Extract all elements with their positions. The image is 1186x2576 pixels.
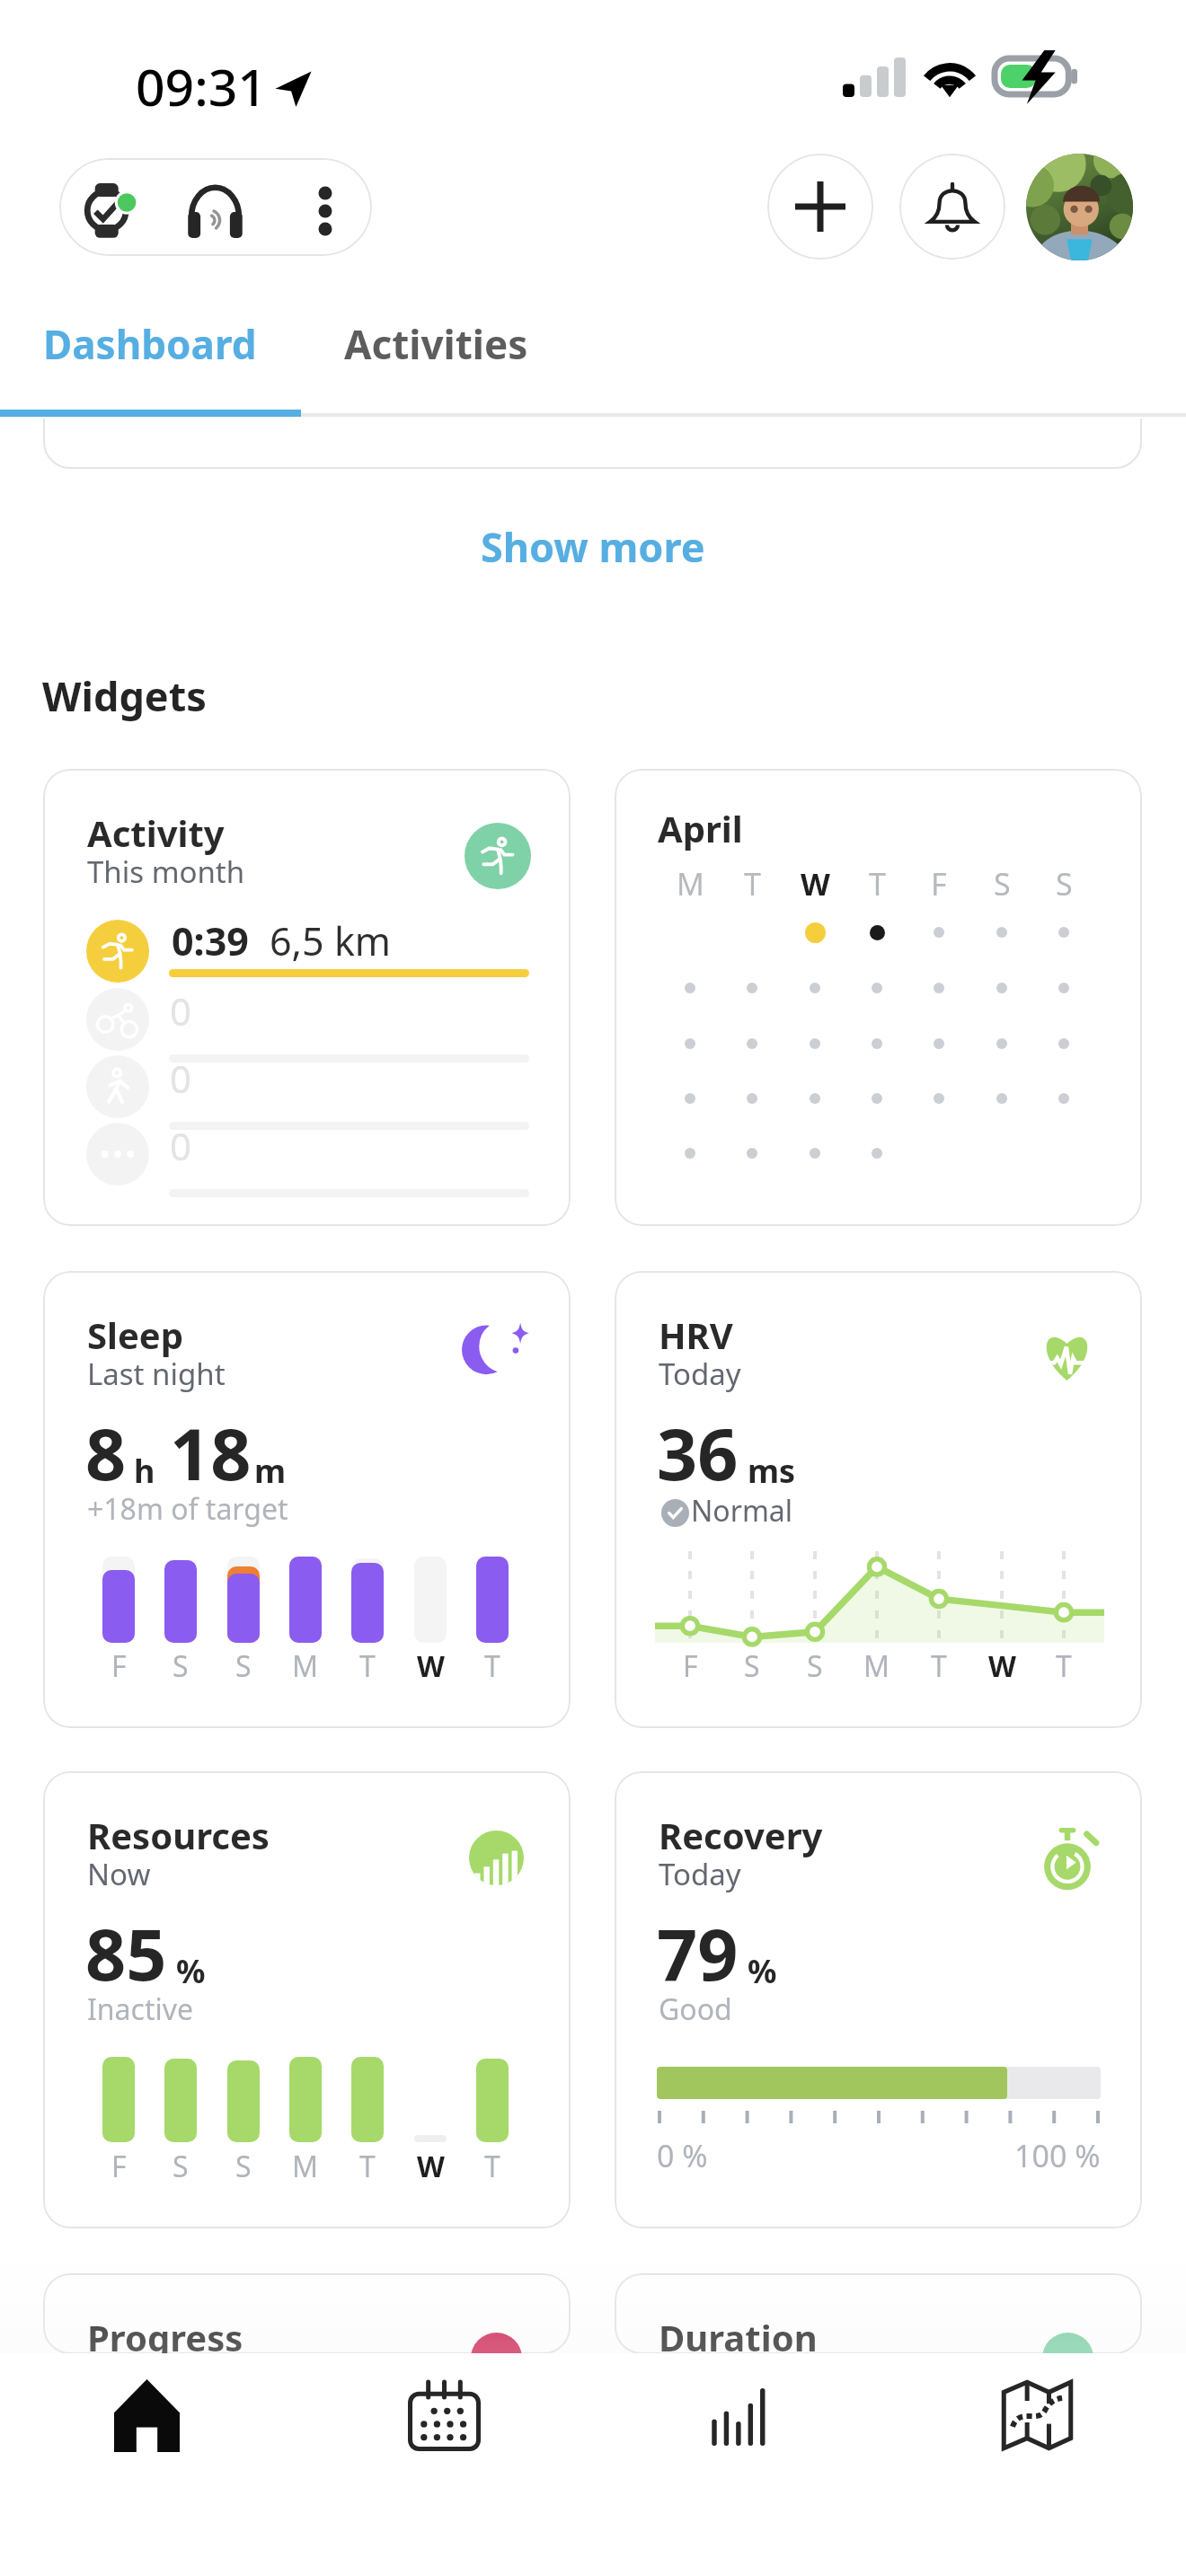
button[interactable]: April [615,769,1142,1226]
staticText: S [1056,863,1073,904]
staticText: 18 [170,1405,252,1502]
staticText: S [744,1646,760,1686]
staticText: % [176,1949,206,1993]
button[interactable]: Notifications [899,154,1005,260]
staticText: F [683,1646,698,1686]
button[interactable]: Add [767,154,873,260]
staticText: F [931,863,947,904]
staticText: Widgets [42,668,207,723]
staticText: W [417,1646,445,1686]
staticText: F [111,2147,127,2186]
staticText: ms [748,1449,796,1493]
staticText: 85 [85,1905,167,2002]
staticText: T [931,1646,947,1686]
staticText: W [801,863,830,904]
staticText: Show more [481,519,705,574]
staticText: S [173,1646,189,1686]
staticText: S [807,1646,823,1686]
staticText: 0 [170,985,192,1037]
staticText: S [235,2147,252,2186]
button[interactable] [59,158,372,256]
staticText: HRV [659,1310,733,1359]
staticText: T [869,863,886,904]
staticText: M [677,863,704,904]
staticText: S [173,2147,189,2186]
staticText: 0 [170,1053,192,1104]
staticText: Today [659,1854,741,1894]
staticText: W [417,2147,445,2186]
staticText: S [235,1646,252,1686]
staticText: 8 [85,1405,127,1502]
button[interactable]: Profile [1026,154,1133,260]
staticText: This month [87,851,245,892]
staticText: 36 [657,1405,739,1502]
staticText: Duration [659,2313,818,2354]
staticText: Progress [87,2313,243,2354]
staticText: April [658,804,743,852]
button[interactable]: Map [985,2362,1089,2466]
staticText: Activities [344,317,528,371]
staticText: Inactive [87,1989,194,2029]
staticText: Today [659,1354,741,1394]
staticText: 09:31 [136,51,267,121]
staticText: Dashboard [43,317,257,371]
staticText: T [484,2147,500,2186]
staticText: Recovery [659,1811,823,1859]
staticText: 79 [657,1905,739,2002]
staticText: Now [87,1854,151,1894]
staticText: Good [659,1989,732,2029]
staticText: T [1056,1646,1072,1686]
staticText: h [134,1449,155,1493]
staticText: 100 % [1014,2135,1101,2176]
button[interactable]: Activity [43,769,571,1226]
staticText: 6,5 km [270,914,392,967]
staticText: +18m of target [87,1489,288,1529]
button[interactable]: Duration [615,2273,1142,2354]
staticText: Resources [87,1811,270,1859]
button[interactable]: Progress [43,2273,571,2354]
staticText: W [988,1646,1016,1686]
button[interactable]: Resources [43,1771,571,2228]
staticText: T [484,1646,500,1686]
staticText: 0 [170,1120,192,1171]
staticText: Last night [87,1354,226,1394]
staticText: T [744,863,761,904]
button[interactable]: Recovery [615,1771,1142,2228]
staticText: m [254,1449,287,1493]
button[interactable]: Activities [301,275,571,417]
button[interactable]: Sleep [43,1271,571,1728]
button[interactable]: Calendar [392,2362,496,2466]
staticText: 0 % [657,2135,708,2176]
staticText: M [292,2147,319,2186]
button[interactable]: Show more [0,506,1186,587]
staticText: T [359,2147,376,2186]
button[interactable]: HRV [615,1271,1142,1728]
staticText: Normal [691,1491,793,1531]
button[interactable]: Dashboard [0,275,301,417]
staticText: % [748,1949,777,1993]
staticText: T [359,1646,376,1686]
staticText: F [111,1646,127,1686]
button[interactable]: Home [94,2362,199,2466]
button[interactable]: Statistics [687,2362,792,2466]
staticText: M [292,1646,319,1686]
staticText: Activity [87,808,225,857]
staticText: S [994,863,1011,904]
staticText: M [863,1646,890,1686]
staticText: Sleep [87,1310,183,1359]
staticText: 0:39 [172,914,249,967]
